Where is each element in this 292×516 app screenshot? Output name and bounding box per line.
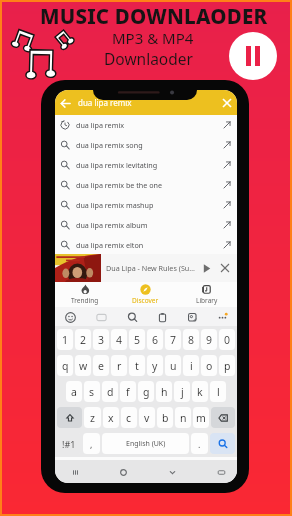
button[interactable]: r — [111, 355, 127, 376]
button[interactable]: dua lipa remix levitating — [55, 155, 237, 175]
button[interactable]: t — [129, 355, 145, 376]
button[interactable]: 1 — [57, 329, 73, 350]
staticText: g — [143, 385, 150, 399]
button[interactable]: 2 — [75, 329, 91, 350]
staticText: dua lipa remix elton — [76, 240, 144, 250]
button[interactable]: h — [156, 381, 172, 402]
button[interactable]: Close player — [218, 261, 232, 275]
button[interactable]: Clear search — [220, 96, 234, 110]
staticText: 1 — [62, 333, 69, 347]
staticText: o — [206, 359, 213, 373]
staticText: v — [144, 411, 150, 425]
staticText: 0 — [224, 333, 231, 347]
button[interactable]: u — [165, 355, 181, 376]
button[interactable]: Discover — [115, 282, 176, 307]
button[interactable]: 7 — [165, 329, 181, 350]
button[interactable]: g — [138, 381, 154, 402]
button[interactable]: dua lipa remix mashup — [55, 195, 237, 215]
button[interactable]: c — [121, 407, 137, 428]
staticText: j — [181, 385, 184, 399]
button[interactable]: i — [183, 355, 199, 376]
staticText: l — [217, 385, 220, 399]
button[interactable]: !#1 — [57, 433, 81, 454]
staticText: f — [126, 385, 130, 399]
button[interactable]: dua lipa remix album — [55, 215, 237, 235]
button[interactable]: x — [103, 407, 119, 428]
button[interactable]: GIF — [86, 307, 117, 327]
staticText: Dua Lipa - New Rules (Suprafi. — [106, 263, 199, 273]
button[interactable]: w — [75, 355, 91, 376]
button[interactable]: q — [57, 355, 73, 376]
button[interactable]: s — [84, 381, 100, 402]
button[interactable]: z — [84, 407, 101, 428]
staticText: d — [107, 385, 114, 399]
staticText: h — [161, 385, 168, 399]
button[interactable]: Back — [164, 464, 180, 480]
staticText: Downlaoder — [104, 48, 193, 69]
button[interactable]: 6 — [147, 329, 163, 350]
button[interactable]: l — [210, 381, 226, 402]
button[interactable]: Dua Lipa - New Rules (Suprafi. — [55, 254, 237, 282]
button[interactable]: 9 — [201, 329, 217, 350]
staticText: Discover — [132, 296, 159, 305]
button[interactable]: e — [93, 355, 109, 376]
staticText: y — [152, 359, 158, 373]
staticText: b — [162, 411, 169, 425]
staticText: s — [89, 385, 95, 399]
button[interactable]: f — [120, 381, 136, 402]
button[interactable]: 5 — [129, 329, 145, 350]
button[interactable]: dua lipa remix elton — [55, 235, 237, 255]
staticText: e — [98, 359, 104, 373]
button[interactable]: Stickers — [177, 307, 207, 327]
button[interactable]: dua lipa remix be the one — [55, 175, 237, 195]
button[interactable]: Emoji — [55, 307, 86, 327]
button[interactable]: Back — [57, 95, 73, 111]
button[interactable]: , — [83, 433, 100, 454]
button[interactable]: k — [192, 381, 208, 402]
button[interactable]: Backspace — [211, 407, 235, 428]
button[interactable]: dua lipa remix song — [55, 135, 237, 155]
button[interactable]: 3 — [93, 329, 109, 350]
button[interactable]: Library — [176, 282, 237, 307]
button[interactable]: 0 — [219, 329, 235, 350]
staticText: z — [90, 411, 95, 425]
button[interactable]: 8 — [183, 329, 199, 350]
button[interactable]: English (UK) — [102, 433, 189, 454]
button[interactable]: More options — [207, 307, 237, 327]
button[interactable]: Recents — [67, 464, 83, 480]
button[interactable]: m — [193, 407, 209, 428]
button[interactable]: 4 — [111, 329, 127, 350]
button[interactable]: Trending — [55, 282, 115, 307]
button[interactable]: y — [147, 355, 163, 376]
staticText: dua lipa remix song — [76, 140, 143, 150]
button[interactable]: Clipboard — [147, 307, 177, 327]
button[interactable]: n — [175, 407, 191, 428]
button[interactable]: b — [157, 407, 173, 428]
button[interactable]: d — [102, 381, 118, 402]
button[interactable]: v — [139, 407, 155, 428]
staticText: x — [108, 411, 114, 425]
staticText: dua lipa remix levitating — [76, 160, 158, 170]
button[interactable]: Home — [115, 464, 131, 480]
staticText: u — [170, 359, 177, 373]
button[interactable]: dua lipa remix — [55, 115, 237, 135]
button[interactable]: . — [191, 433, 208, 454]
staticText: k — [197, 385, 203, 399]
button[interactable]: Shift — [57, 407, 82, 428]
button[interactable]: Search — [117, 307, 147, 327]
button[interactable]: j — [174, 381, 190, 402]
staticText: i — [190, 359, 193, 373]
button[interactable]: o — [201, 355, 217, 376]
staticText: 3 — [98, 333, 105, 347]
staticText: 9 — [206, 333, 213, 347]
staticText: dua lipa remix mashup — [76, 200, 154, 210]
button[interactable]: p — [219, 355, 235, 376]
staticText: . — [198, 438, 201, 450]
staticText: 2 — [80, 333, 87, 347]
button[interactable]: a — [66, 381, 82, 402]
button[interactable]: Pause — [229, 32, 277, 80]
button[interactable]: Hide keyboard — [213, 464, 229, 480]
button[interactable]: Search — [210, 433, 235, 454]
staticText: t — [135, 359, 139, 373]
button[interactable]: Play — [199, 261, 213, 275]
